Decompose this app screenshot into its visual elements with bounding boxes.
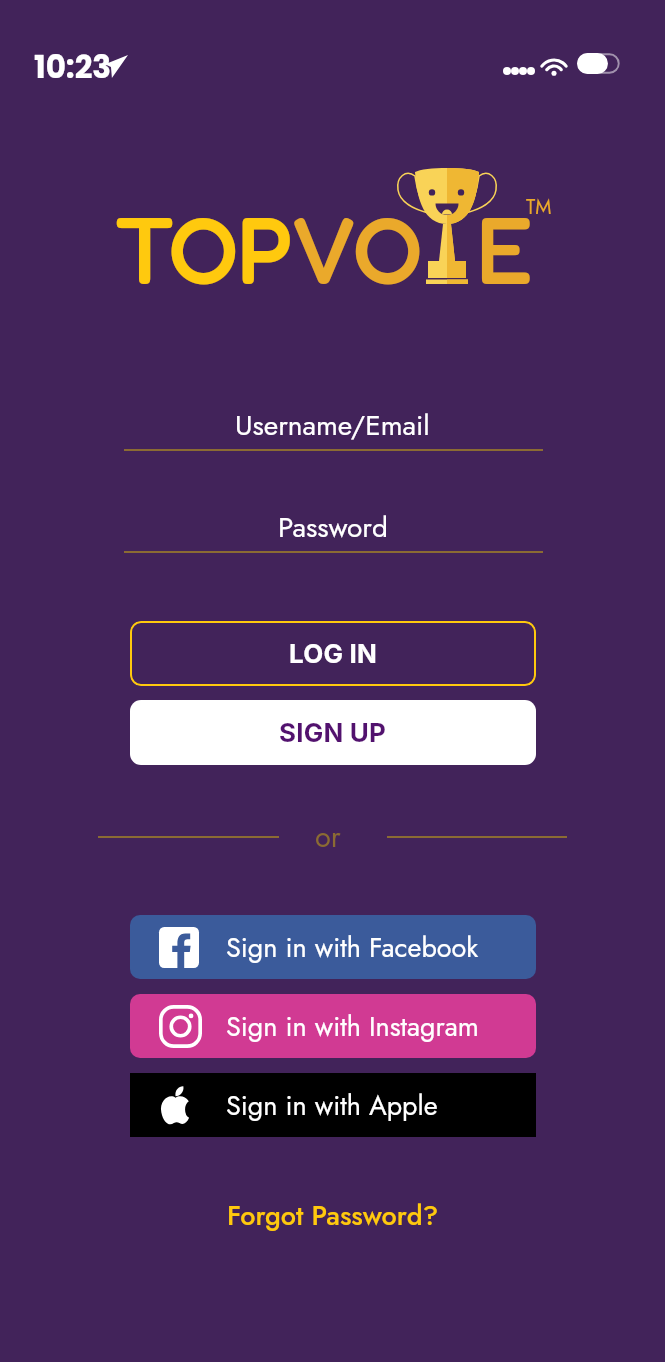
staticText: 10:23 — [34, 45, 112, 88]
staticText: TOP — [114, 192, 293, 305]
button[interactable]: Sign in with Facebook — [130, 915, 536, 979]
button[interactable]: Sign in with Apple — [130, 1073, 536, 1137]
button[interactable]: Forgot Password? — [221, 1190, 445, 1241]
staticText: TM — [526, 193, 552, 222]
staticText: Sign in with Facebook — [226, 928, 479, 967]
staticText: Password — [278, 507, 388, 547]
staticText: Sign in with Instagram — [226, 1007, 479, 1046]
staticText: Sign in with Apple — [226, 1086, 438, 1125]
staticText: Username/Email — [235, 405, 430, 445]
staticText: VO — [290, 192, 422, 305]
staticText: E — [476, 192, 534, 305]
staticText: or — [315, 816, 341, 858]
button[interactable]: LOG IN — [130, 621, 536, 686]
staticText: SIGN UP — [279, 717, 387, 748]
staticText: LOG IN — [289, 638, 377, 669]
button[interactable]: SIGN UP — [130, 700, 536, 765]
button[interactable]: Sign in with Instagram — [130, 994, 536, 1058]
